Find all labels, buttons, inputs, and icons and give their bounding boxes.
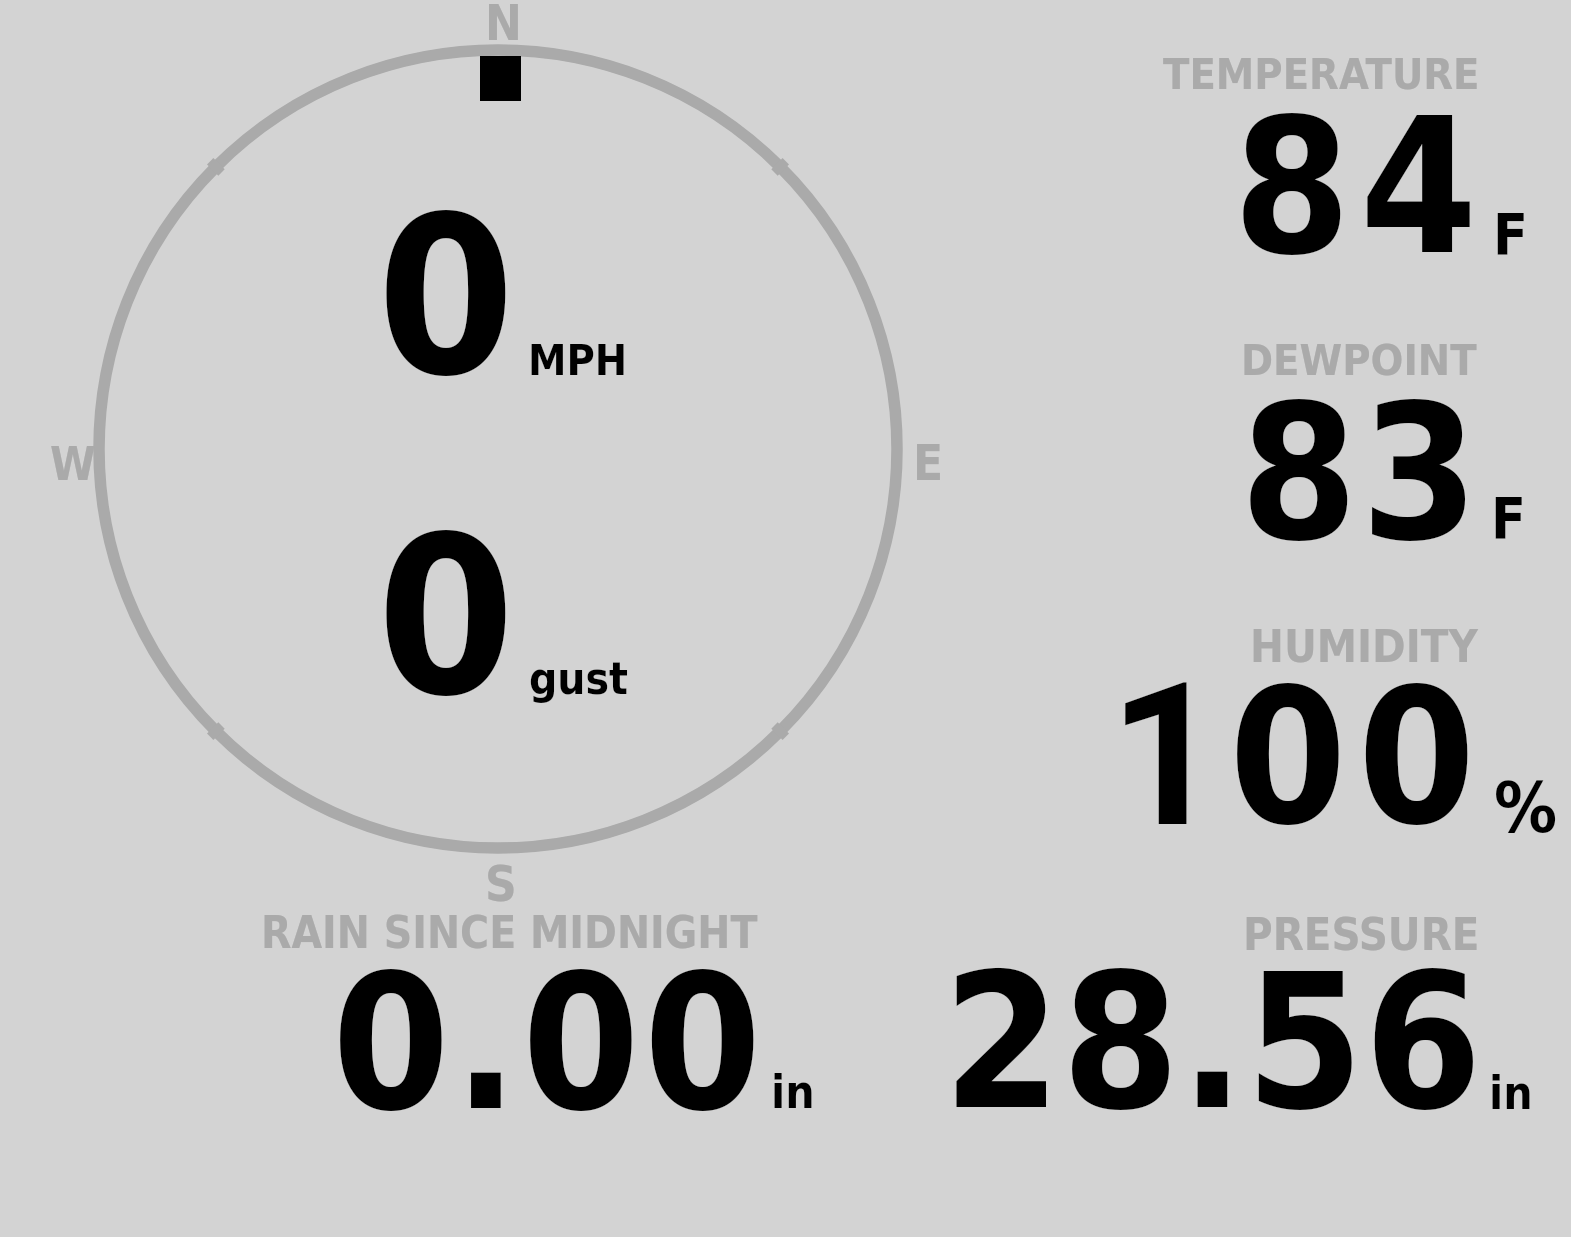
staticText: 28.56 — [943, 932, 1483, 1151]
button[interactable]: Rain since midnight 0.00 inches — [200, 880, 860, 1140]
staticText: TEMPERATURE — [1163, 49, 1480, 99]
staticText: 0 — [377, 169, 515, 425]
staticText: 0 — [377, 489, 515, 745]
staticText: in — [771, 1065, 815, 1119]
staticText: MPH — [528, 335, 628, 385]
button[interactable]: Wind direction: north — [0, 0, 965, 915]
button[interactable]: Dewpoint 83 degrees Fahrenheit — [1000, 300, 1571, 560]
staticText: 1 — [1109, 640, 1223, 872]
staticText: F — [1491, 486, 1527, 552]
staticText: 83 — [1240, 363, 1482, 582]
button[interactable]: Humidity 100 percent — [1000, 590, 1571, 850]
button[interactable]: Wind speed 0 miles per hour — [240, 170, 740, 400]
button[interactable]: Temperature 84 degrees Fahrenheit — [1000, 20, 1571, 280]
staticText: gust — [529, 653, 629, 704]
staticText: RAIN SINCE MIDNIGHT — [261, 907, 758, 958]
staticText: PRESSURE — [1243, 908, 1480, 960]
staticText: N — [485, 0, 522, 52]
staticText: DEWPOINT — [1241, 335, 1477, 385]
staticText: W — [50, 437, 96, 491]
staticText: 00 — [1229, 647, 1487, 866]
staticText: 84 — [1233, 77, 1487, 296]
staticText: S — [485, 856, 517, 913]
staticText: 0.00 — [332, 933, 766, 1152]
staticText: in — [1489, 1066, 1533, 1120]
button[interactable]: Pressure 28.56 inches of mercury — [880, 880, 1571, 1140]
staticText: HUMIDITY — [1250, 620, 1478, 672]
staticText: % — [1494, 767, 1558, 848]
button[interactable]: Wind gust 0 miles per hour — [240, 490, 740, 720]
staticText: F — [1493, 202, 1529, 268]
staticText: E — [913, 435, 944, 492]
